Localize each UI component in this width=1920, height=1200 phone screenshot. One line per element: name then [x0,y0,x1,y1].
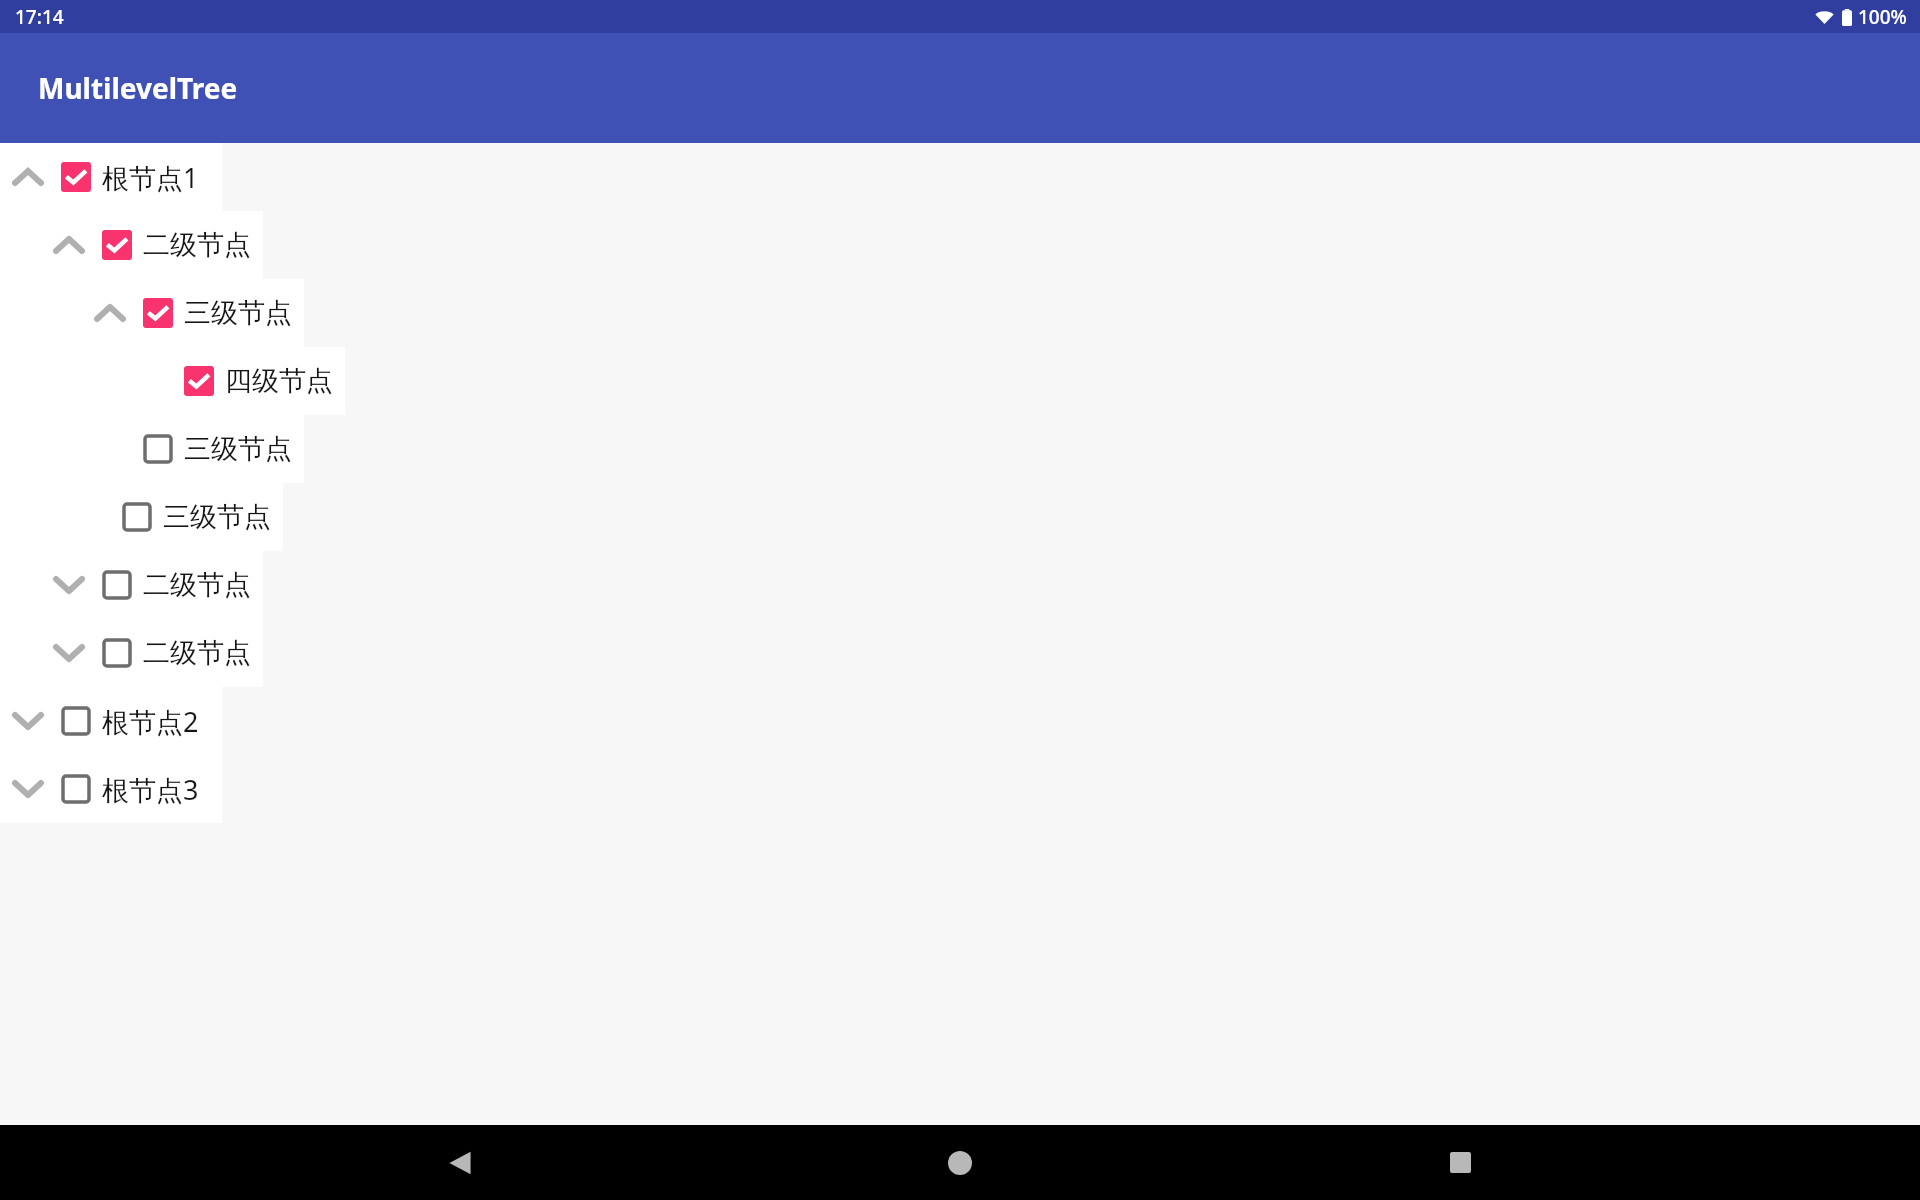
button[interactable]: Home [920,1125,1000,1200]
button[interactable]: Toggle 三级节点 [117,483,157,551]
button[interactable]: Expand [41,619,97,687]
button[interactable]: Expand [0,755,222,823]
button[interactable]: Toggle 四级节点 [179,347,219,415]
button[interactable]: Back [420,1125,500,1200]
button[interactable]: Collapse [0,143,56,211]
staticText: 二级节点 [143,636,251,670]
button[interactable]: Expand [0,347,345,415]
staticText: 100% [1858,4,1907,30]
staticText: 三级节点 [184,432,292,466]
button[interactable]: Toggle 二级节点 [97,619,137,687]
button[interactable]: Collapse [0,143,222,211]
button[interactable]: Expand [0,619,263,687]
button[interactable]: Expand [0,483,283,551]
staticText: 17:14 [15,4,64,30]
staticText: 根节点1 [102,159,199,196]
button[interactable]: Toggle 二级节点 [97,211,137,279]
button[interactable]: Toggle 三级节点 [138,279,178,347]
button[interactable]: Expand [0,755,56,823]
button[interactable]: Expand [0,687,56,755]
staticText: 二级节点 [143,228,251,262]
button[interactable]: Toggle 根节点3 [56,755,96,823]
staticText: 根节点2 [102,703,199,740]
button[interactable]: Toggle 三级节点 [138,415,178,483]
button[interactable]: Collapse [82,279,138,347]
staticText: 二级节点 [143,568,251,602]
button[interactable]: Collapse [41,211,97,279]
button[interactable]: Expand [41,551,97,619]
button[interactable]: Collapse [0,279,304,347]
staticText: 三级节点 [163,500,271,534]
button[interactable]: Expand [0,415,304,483]
staticText: 三级节点 [184,296,292,330]
staticText: 根节点3 [102,771,199,808]
button[interactable]: Collapse [0,211,263,279]
button[interactable]: Recents [1420,1125,1500,1200]
button[interactable]: Toggle 根节点2 [56,687,96,755]
staticText: MultilevelTree [38,69,238,107]
button[interactable]: Expand [0,687,222,755]
staticText: 四级节点 [225,364,333,398]
button[interactable]: Toggle 二级节点 [97,551,137,619]
button[interactable]: Expand [0,551,263,619]
button[interactable]: Toggle 根节点1 [56,143,96,211]
